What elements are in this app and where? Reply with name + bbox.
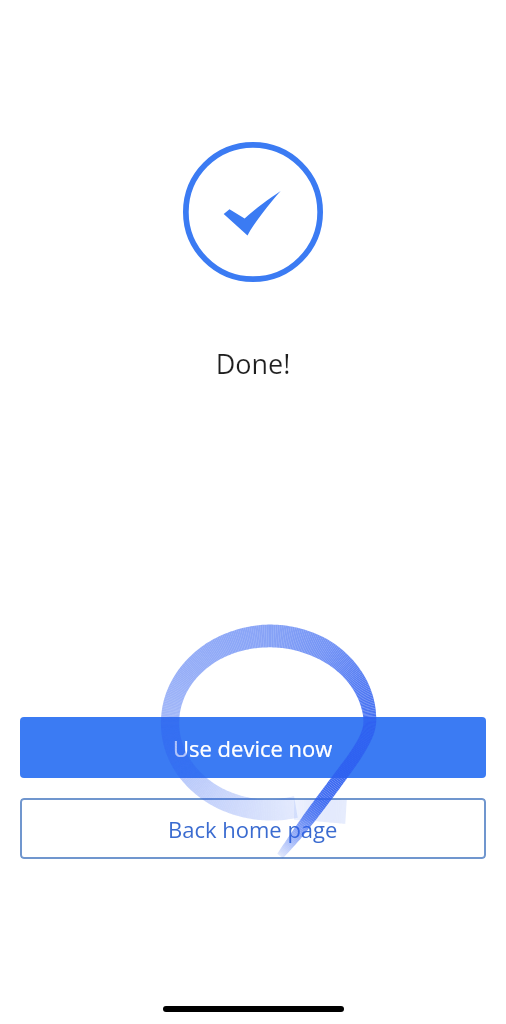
button[interactable]: Back home page — [20, 798, 486, 859]
staticText: Done! — [0, 345, 506, 382]
button[interactable]: Use device now — [20, 717, 486, 778]
staticText: Use device now — [173, 733, 333, 763]
other: Success — [183, 142, 323, 282]
staticText: Back home page — [168, 814, 338, 844]
